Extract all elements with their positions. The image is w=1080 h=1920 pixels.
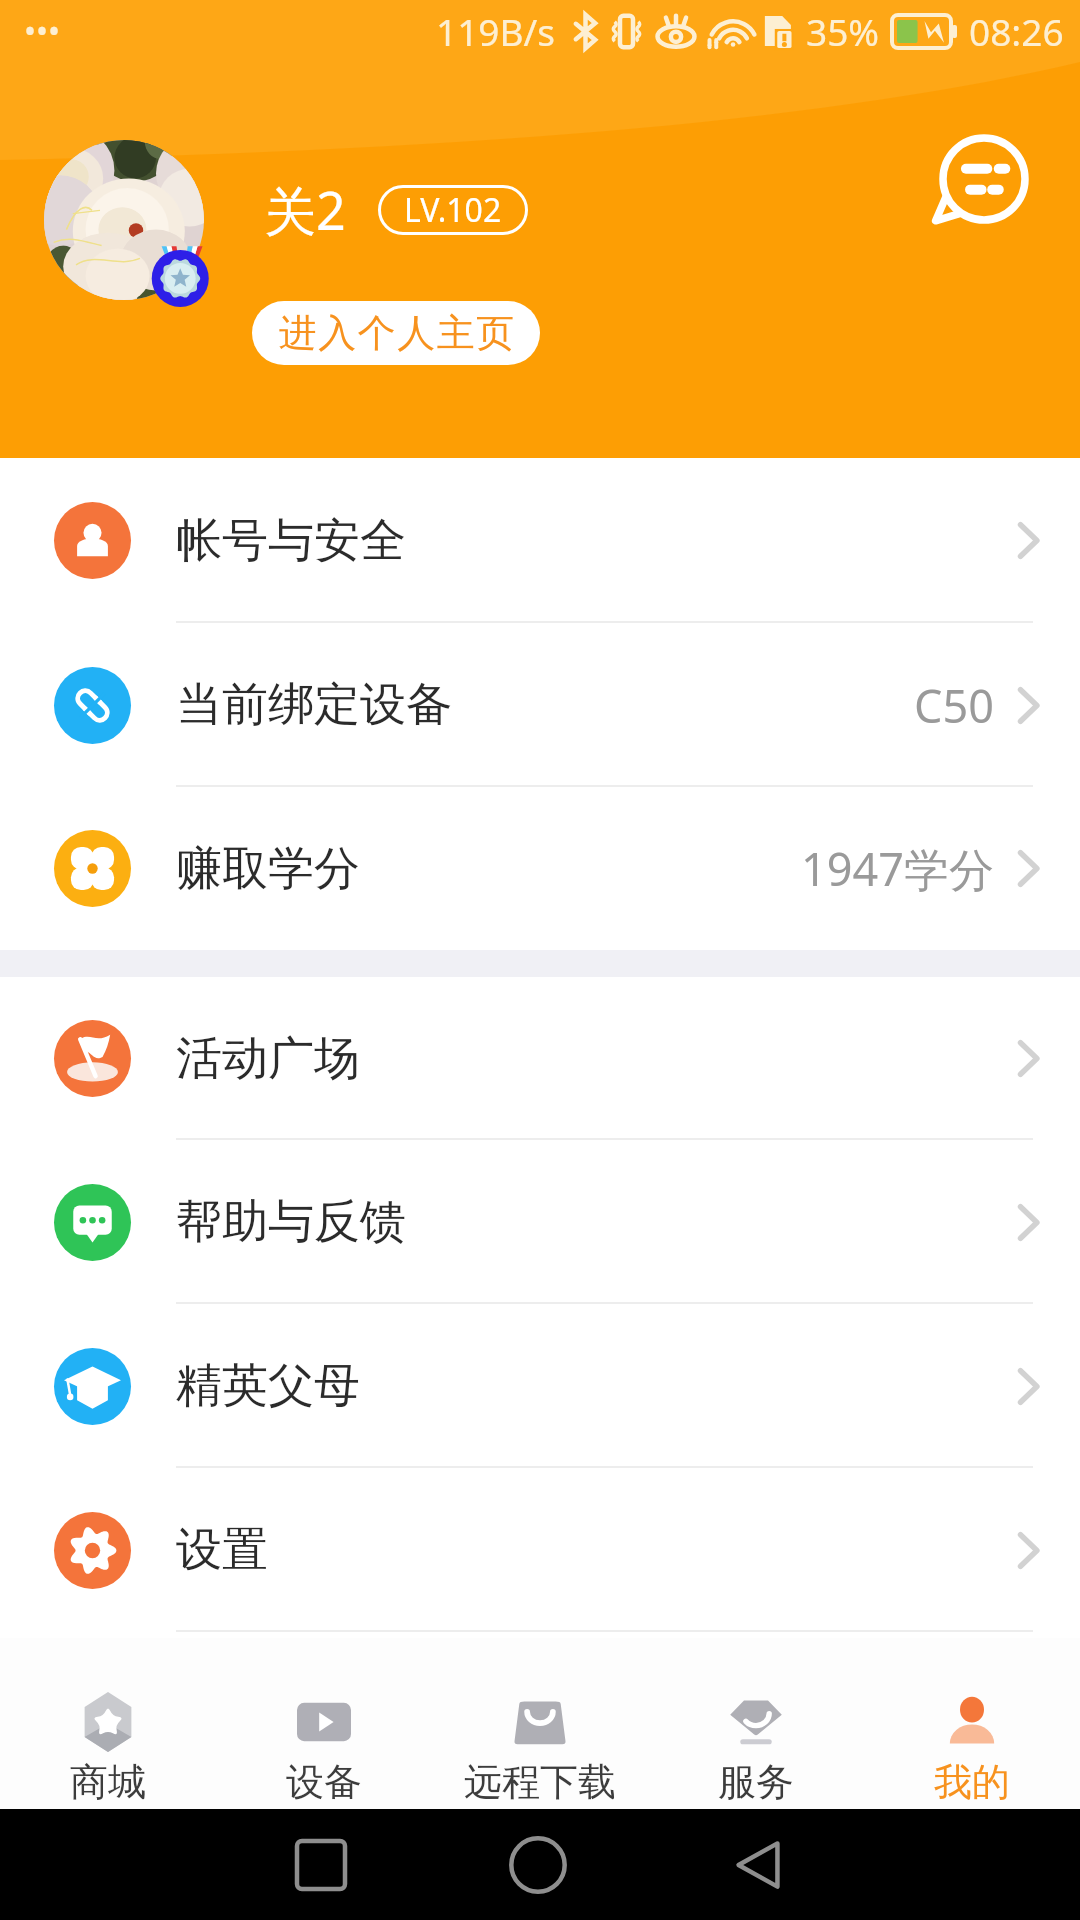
staticText: 设备: [286, 1758, 362, 1806]
staticText: 进入个人主页: [278, 309, 515, 357]
staticText: 帮助与反馈: [176, 1193, 406, 1251]
button[interactable]: 设备: [216, 1638, 432, 1809]
button[interactable]: Recents: [261, 1809, 381, 1920]
staticText: 帐号与安全: [176, 512, 406, 570]
staticText: 08:26: [969, 6, 1064, 56]
button[interactable]: 帐号与安全: [0, 458, 1080, 623]
button[interactable]: 服务: [648, 1638, 864, 1809]
button[interactable]: 赚取学分: [0, 787, 1080, 950]
button[interactable]: 远程下载: [432, 1638, 648, 1809]
staticText: 商城: [70, 1758, 146, 1806]
staticText: LV.102: [404, 188, 502, 232]
staticText: 当前绑定设备: [176, 676, 452, 734]
staticText: 设置: [176, 1521, 268, 1579]
button[interactable]: Messages: [936, 131, 1032, 227]
button[interactable]: 帮助与反馈: [0, 1140, 1080, 1304]
button[interactable]: Home: [478, 1809, 598, 1920]
button[interactable]: 设置: [0, 1468, 1080, 1632]
staticText: 服务: [718, 1758, 794, 1806]
button[interactable]: 我的: [864, 1638, 1080, 1809]
staticText: 赚取学分: [176, 840, 360, 898]
staticText: 我的: [934, 1758, 1010, 1806]
button[interactable]: Back: [698, 1809, 818, 1920]
button[interactable]: 精英父母: [0, 1304, 1080, 1468]
staticText: 1947学分: [801, 838, 994, 899]
staticText: •••: [24, 9, 61, 53]
button[interactable]: 活动广场: [0, 977, 1080, 1140]
staticText: 关2: [264, 174, 346, 245]
button[interactable]: 当前绑定设备: [0, 623, 1080, 787]
staticText: 精英父母: [176, 1357, 360, 1415]
staticText: 119B/s: [436, 6, 556, 56]
staticText: C50: [914, 675, 994, 736]
staticText: 远程下载: [464, 1758, 616, 1806]
staticText: 活动广场: [176, 1030, 360, 1088]
button[interactable]: 商城: [0, 1638, 216, 1809]
button[interactable]: 进入个人主页: [252, 301, 540, 365]
staticText: 35%: [806, 6, 880, 56]
